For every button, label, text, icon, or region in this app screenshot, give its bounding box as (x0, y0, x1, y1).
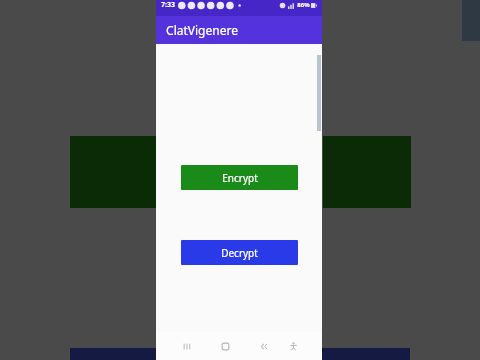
staticText: Decrypt (221, 246, 258, 260)
staticText: 86% (297, 1, 310, 9)
button[interactable]: Accessibility (281, 334, 305, 358)
button[interactable]: Home (213, 334, 237, 358)
button[interactable]: Decrypt (181, 240, 298, 265)
button[interactable]: Recent apps (175, 334, 199, 358)
staticText: Encrypt (222, 171, 258, 185)
staticText: 7:33 (161, 0, 175, 10)
button[interactable]: Encrypt (181, 165, 298, 190)
staticText: ClatVigenere (166, 22, 238, 38)
button[interactable]: Back (251, 334, 275, 358)
